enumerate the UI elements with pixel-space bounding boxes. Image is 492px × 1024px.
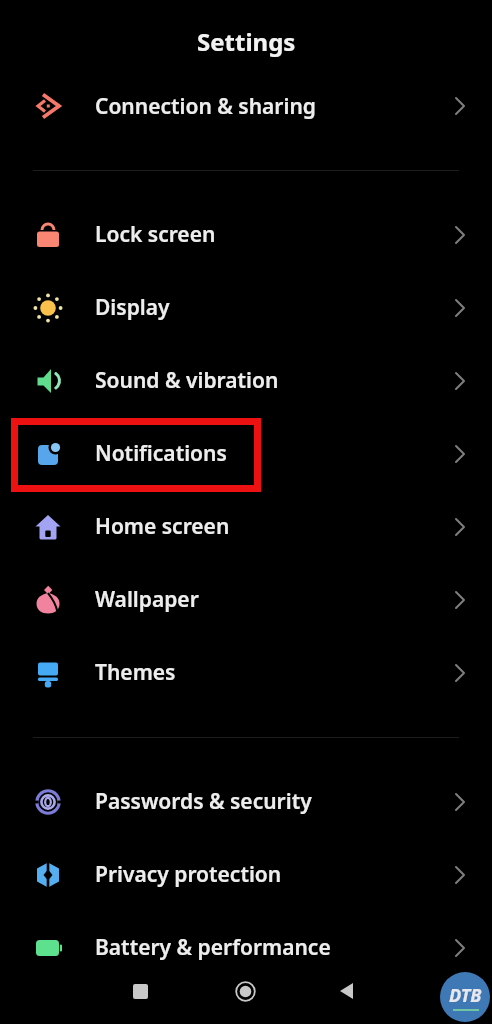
- staticText: Lock screen: [95, 220, 455, 249]
- button[interactable]: Privacy protection: [0, 838, 492, 911]
- staticText: Settings: [197, 25, 296, 58]
- staticText: Sound & vibration: [95, 366, 455, 395]
- button[interactable]: Display: [0, 271, 492, 344]
- staticText: Display: [95, 293, 455, 322]
- button[interactable]: DTB: [440, 972, 490, 1022]
- staticText: Themes: [95, 658, 455, 687]
- staticText: Home screen: [95, 512, 455, 541]
- staticText: DTB: [449, 983, 482, 1008]
- staticText: Connection & sharing: [95, 92, 455, 121]
- button[interactable]: [235, 981, 256, 1002]
- button[interactable]: [130, 981, 150, 1001]
- staticText: Wallpaper: [95, 585, 455, 614]
- staticText: Battery & performance: [95, 933, 455, 962]
- button[interactable]: Passwords & security: [0, 765, 492, 838]
- staticText: Privacy protection: [95, 860, 455, 889]
- button[interactable]: Battery & performance: [0, 911, 492, 984]
- button[interactable]: Notifications: [0, 417, 492, 490]
- button[interactable]: Themes: [0, 636, 492, 709]
- button[interactable]: Sound & vibration: [0, 344, 492, 417]
- staticText: Passwords & security: [95, 787, 455, 816]
- button[interactable]: Home screen: [0, 490, 492, 563]
- button[interactable]: Connection & sharing: [0, 70, 492, 142]
- staticText: Notifications: [95, 439, 455, 468]
- button[interactable]: Lock screen: [0, 198, 492, 271]
- button[interactable]: Wallpaper: [0, 563, 492, 636]
- button[interactable]: [337, 982, 355, 1000]
